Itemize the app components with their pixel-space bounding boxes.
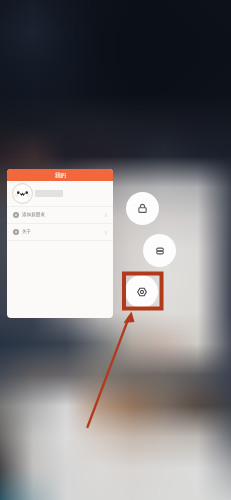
- button[interactable]: [7, 181, 113, 206]
- button[interactable]: Storage: [143, 234, 176, 267]
- staticText: 添加新朋友: [22, 212, 45, 218]
- staticText: 我的: [55, 172, 66, 179]
- button[interactable]: Lock: [126, 192, 159, 225]
- button[interactable]: Settings: [125, 275, 158, 308]
- button[interactable]: 添加新朋友: [7, 207, 113, 223]
- staticText: 关于: [22, 229, 32, 235]
- button[interactable]: 关于: [7, 224, 113, 240]
